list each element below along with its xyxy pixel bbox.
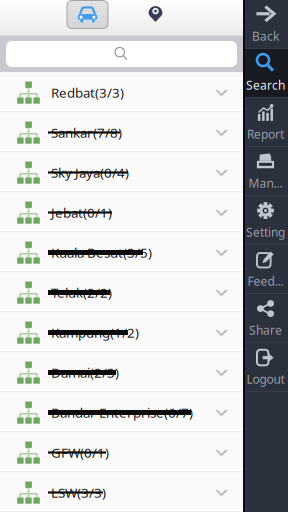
staticText: GFW(0/1) xyxy=(51,444,109,461)
staticText: Redbat(3/3) xyxy=(51,84,124,101)
button[interactable]: Vehicles xyxy=(67,0,108,28)
button[interactable]: Share xyxy=(243,294,288,343)
button[interactable]: Damai(2/3) xyxy=(0,352,243,392)
button[interactable]: Jebat(0/1) xyxy=(0,192,243,232)
button[interactable]: Feed... xyxy=(243,245,288,294)
button[interactable]: Report xyxy=(243,98,288,147)
staticText: Logout xyxy=(246,371,284,387)
staticText: Kuala Besut(3/5) xyxy=(51,244,152,261)
button[interactable]: Man... xyxy=(243,147,288,196)
staticText: Jebat(0/1) xyxy=(51,204,112,221)
button[interactable]: Setting xyxy=(243,196,288,245)
button[interactable]: Kuala Besut(3/5) xyxy=(0,232,243,272)
button[interactable]: Redbat(3/3) xyxy=(0,72,243,112)
button[interactable]: Teluk(2/2) xyxy=(0,272,243,312)
button[interactable]: Sankar(7/8) xyxy=(0,112,243,152)
button[interactable]: Bandar Enterprise(6/7) xyxy=(0,392,243,432)
button[interactable]: Search xyxy=(243,49,288,98)
button[interactable]: Back xyxy=(243,0,288,49)
staticText: Setting xyxy=(246,224,285,240)
button[interactable]: LSW(3/3) xyxy=(0,472,243,512)
staticText: Share xyxy=(249,322,282,338)
staticText: Kampung(1/2) xyxy=(51,324,139,341)
staticText: Man... xyxy=(248,175,282,191)
button[interactable]: Kampung(1/2) xyxy=(0,312,243,352)
button[interactable]: Sky Jaya(0/4) xyxy=(0,152,243,192)
button[interactable]: GFW(0/1) xyxy=(0,432,243,472)
staticText: Search xyxy=(246,77,285,93)
button[interactable]: Search xyxy=(6,41,237,67)
staticText: Sankar(7/8) xyxy=(51,124,122,141)
staticText: LSW(3/3) xyxy=(51,484,106,501)
button[interactable]: Map xyxy=(135,0,176,28)
staticText: Sky Jaya(0/4) xyxy=(51,164,129,181)
staticText: Report xyxy=(247,126,284,142)
staticText: Bandar Enterprise(6/7) xyxy=(51,404,193,421)
staticText: Feed... xyxy=(247,273,283,289)
staticText: Back xyxy=(252,28,279,44)
button[interactable]: Logout xyxy=(243,343,288,392)
staticText: Teluk(2/2) xyxy=(51,284,112,301)
staticText: Damai(2/3) xyxy=(51,364,119,381)
